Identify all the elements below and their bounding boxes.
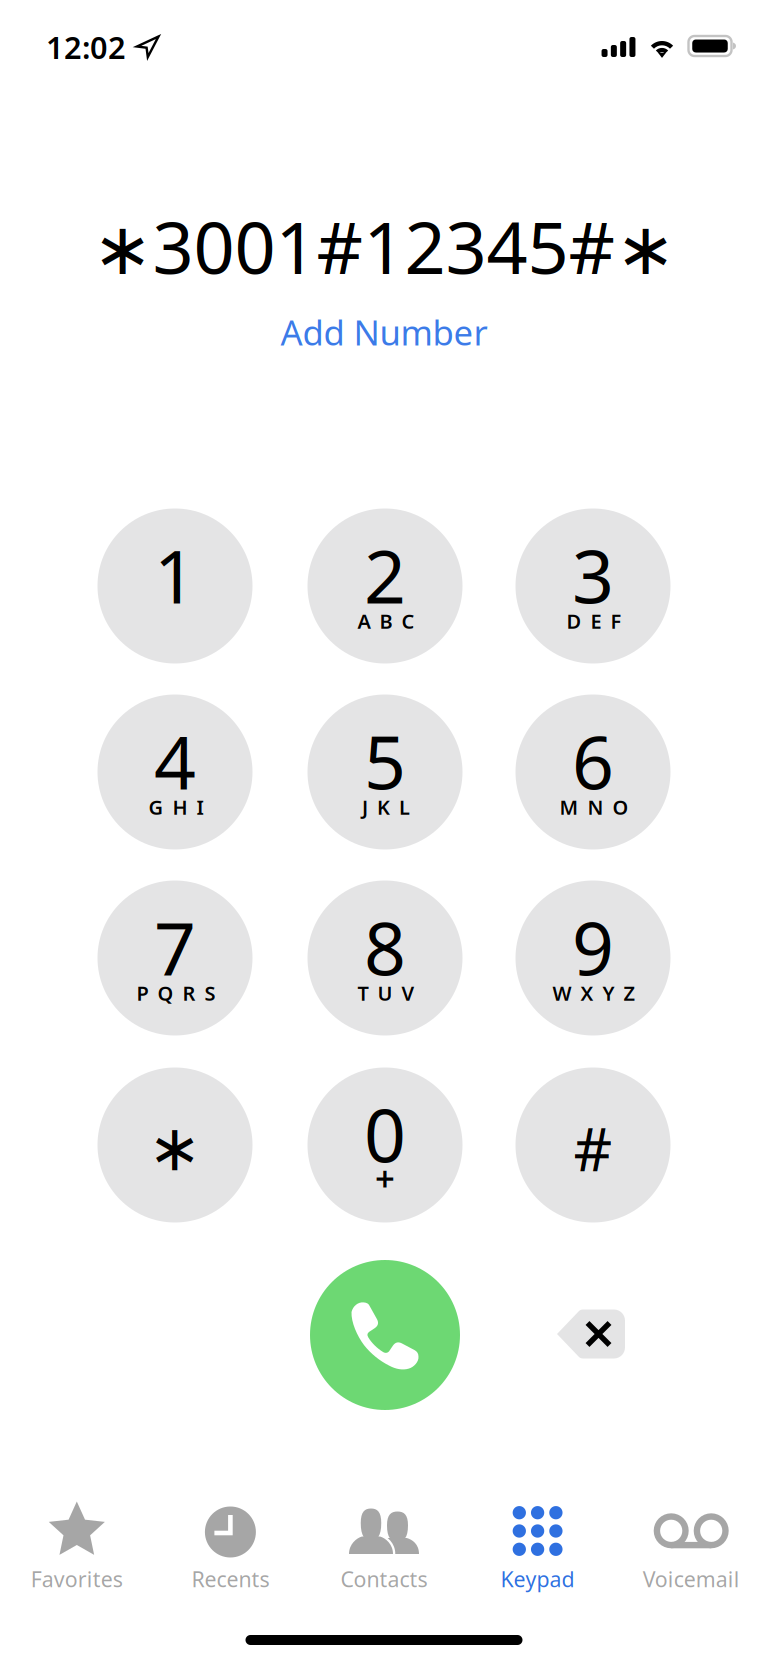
staticText: MNO <box>559 794 628 820</box>
button[interactable]: Favorites <box>0 1480 154 1598</box>
button[interactable]: 0 <box>307 1067 462 1222</box>
staticText: ∗3001#12345#∗ <box>92 198 675 294</box>
staticText: 6 <box>572 712 614 810</box>
button[interactable]: Voicemail <box>614 1480 768 1598</box>
staticText: # <box>573 1108 612 1188</box>
button[interactable]: 8 <box>307 880 462 1035</box>
staticText: Favorites <box>31 1565 123 1593</box>
staticText: GHI <box>148 794 203 820</box>
staticText: PQRS <box>136 980 215 1006</box>
staticText: Add Number <box>280 309 487 355</box>
staticText: 2 <box>364 526 406 624</box>
staticText: 5 <box>364 712 406 810</box>
staticText: 1 <box>154 526 196 624</box>
button[interactable]: 2 <box>307 508 462 663</box>
staticText: 4 <box>154 712 196 810</box>
button[interactable]: Recents <box>154 1480 307 1598</box>
button[interactable]: 7 <box>97 880 252 1035</box>
staticText: 9 <box>572 898 614 996</box>
button[interactable]: Contacts <box>307 1480 461 1598</box>
button[interactable]: ∗ <box>97 1067 252 1222</box>
staticText: 0 <box>364 1085 406 1183</box>
button[interactable]: 3 <box>515 508 670 663</box>
staticText: 3 <box>572 526 614 624</box>
staticText: + <box>375 1155 395 1201</box>
button[interactable]: Delete <box>557 1309 625 1358</box>
staticText: 7 <box>154 898 196 996</box>
button[interactable]: 1 <box>97 508 252 663</box>
button[interactable]: Add Number <box>234 304 534 360</box>
staticText: ABC <box>357 608 414 634</box>
button[interactable]: 4 <box>97 694 252 849</box>
button[interactable]: Keypad <box>461 1480 614 1598</box>
staticText: ∗ <box>148 1112 202 1184</box>
staticText: JKL <box>362 794 410 820</box>
button[interactable]: 6 <box>515 694 670 849</box>
staticText: Voicemail <box>643 1565 740 1593</box>
button[interactable]: # <box>515 1067 670 1222</box>
staticText: 8 <box>364 898 406 996</box>
staticText: WXYZ <box>552 980 635 1006</box>
staticText: DEF <box>566 608 621 634</box>
staticText: Keypad <box>501 1565 575 1593</box>
staticText: TUV <box>357 980 414 1006</box>
staticText: Recents <box>191 1565 269 1593</box>
staticText: 12:02 <box>46 27 126 67</box>
button[interactable]: 9 <box>515 880 670 1035</box>
button[interactable]: 5 <box>307 694 462 849</box>
staticText: Contacts <box>340 1565 427 1593</box>
button[interactable]: Call <box>310 1260 460 1410</box>
